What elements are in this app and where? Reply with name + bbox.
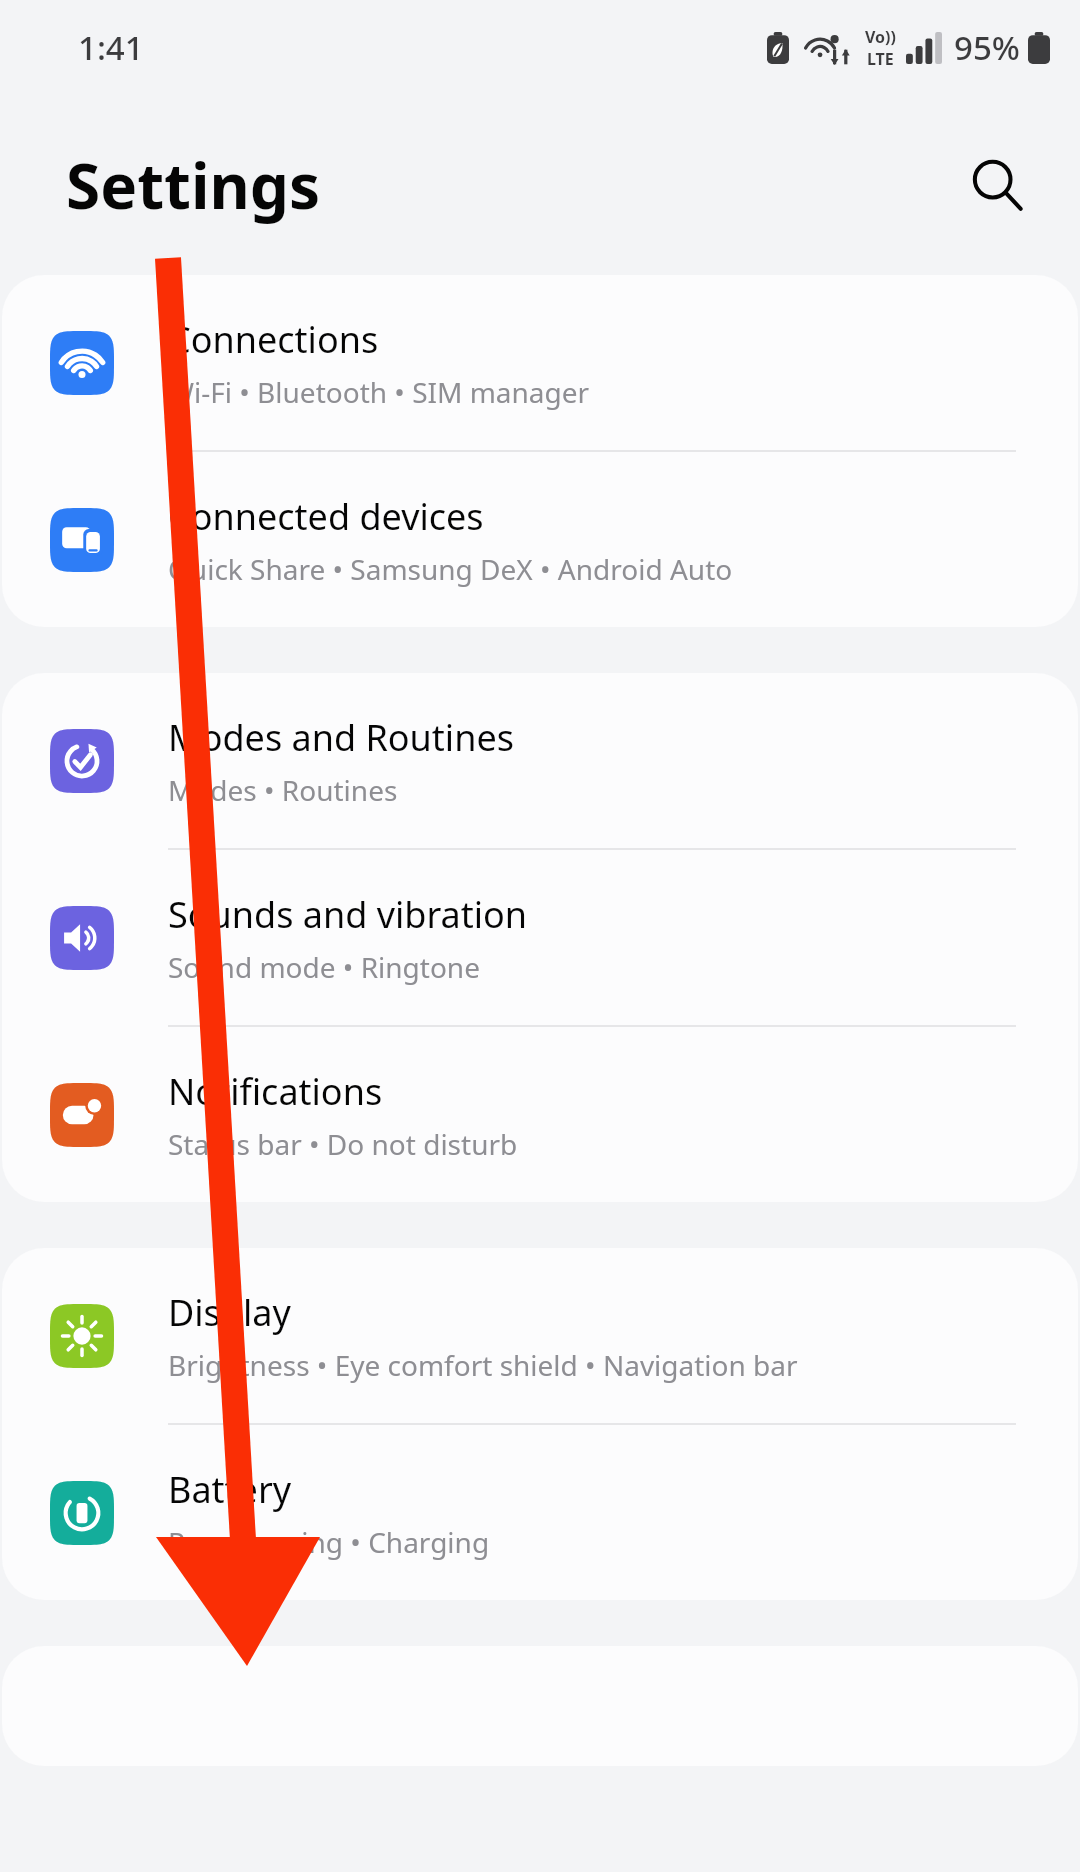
staticText: Display	[168, 1288, 291, 1337]
button[interactable]: Modes and Routines	[2, 673, 1078, 848]
staticText: Notifications	[168, 1067, 383, 1116]
button[interactable]: Battery	[2, 1425, 1078, 1600]
button[interactable]: Display	[2, 1248, 1078, 1423]
staticText: 95%	[954, 25, 1020, 70]
button[interactable]: Connected devices	[2, 452, 1078, 627]
staticText: Modes and Routines	[168, 713, 514, 762]
staticText: Quick Share • Samsung DeX • Android Auto	[168, 550, 733, 588]
staticText: Sound mode • Ringtone	[168, 948, 480, 986]
staticText: 1:41	[78, 25, 144, 70]
button[interactable]: Sounds and vibration	[2, 850, 1078, 1025]
staticText: Connections	[168, 315, 379, 364]
staticText: Sounds and vibration	[168, 890, 528, 939]
staticText: LTE	[867, 48, 894, 70]
staticText: Status bar • Do not disturb	[168, 1125, 518, 1163]
staticText: Brightness • Eye comfort shield • Naviga…	[168, 1346, 798, 1384]
button[interactable]: Connections	[2, 275, 1078, 450]
button[interactable]: Search	[954, 142, 1040, 228]
staticText: Vo))	[865, 26, 896, 48]
staticText: Battery	[168, 1465, 292, 1514]
staticText: Modes • Routines	[168, 771, 398, 809]
button[interactable]: Notifications	[2, 1027, 1078, 1202]
staticText: Settings	[66, 143, 321, 227]
staticText: Power saving • Charging	[168, 1523, 490, 1561]
staticText: Wi-Fi • Bluetooth • SIM manager	[168, 373, 590, 411]
staticText: Connected devices	[168, 492, 484, 541]
